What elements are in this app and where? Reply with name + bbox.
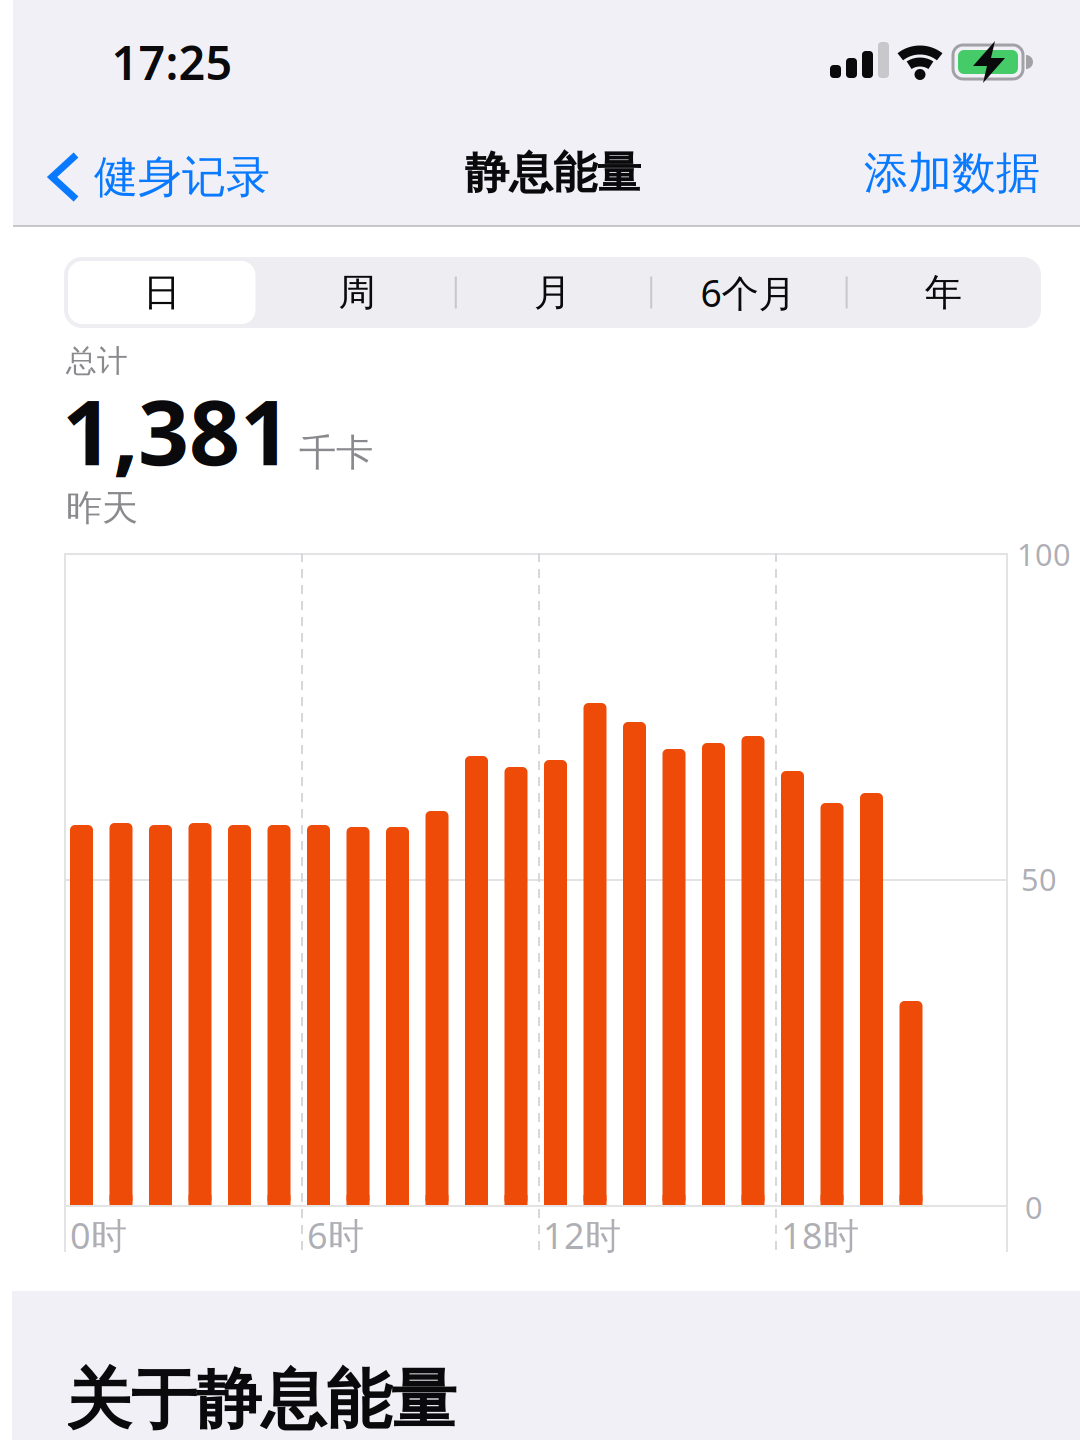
button[interactable]: 日 <box>68 261 255 324</box>
staticText: 日 <box>143 270 180 315</box>
staticText: 静息能量 <box>465 146 641 200</box>
button[interactable]: 添加数据 <box>846 145 1058 201</box>
staticText: 50 <box>1021 859 1057 899</box>
button[interactable]: 周 <box>259 257 455 328</box>
staticText: 昨天 <box>66 486 138 530</box>
staticText: 千卡 <box>299 430 373 476</box>
button[interactable]: 健身记录 <box>52 150 270 204</box>
staticText: 月 <box>534 270 571 315</box>
staticText: 12时 <box>543 1211 621 1259</box>
staticText: 关于静息能量 <box>66 1360 456 1440</box>
button[interactable]: 6个月 <box>650 257 846 328</box>
button[interactable]: 年 <box>846 257 1041 328</box>
staticText: 年 <box>925 270 962 315</box>
staticText: 健身记录 <box>94 150 270 204</box>
staticText: 100 <box>1017 534 1071 574</box>
staticText: 18时 <box>781 1211 859 1259</box>
button[interactable]: 月 <box>455 257 650 328</box>
staticText: 17:25 <box>111 31 232 93</box>
staticText: 0时 <box>70 1211 127 1259</box>
staticText: 6个月 <box>700 268 795 317</box>
staticText: 1,381 <box>62 371 291 490</box>
staticText: 周 <box>339 270 376 315</box>
staticText: 总计 <box>66 342 128 380</box>
staticText: 6时 <box>307 1211 364 1259</box>
staticText: 添加数据 <box>864 146 1040 200</box>
staticText: 0 <box>1025 1187 1043 1227</box>
